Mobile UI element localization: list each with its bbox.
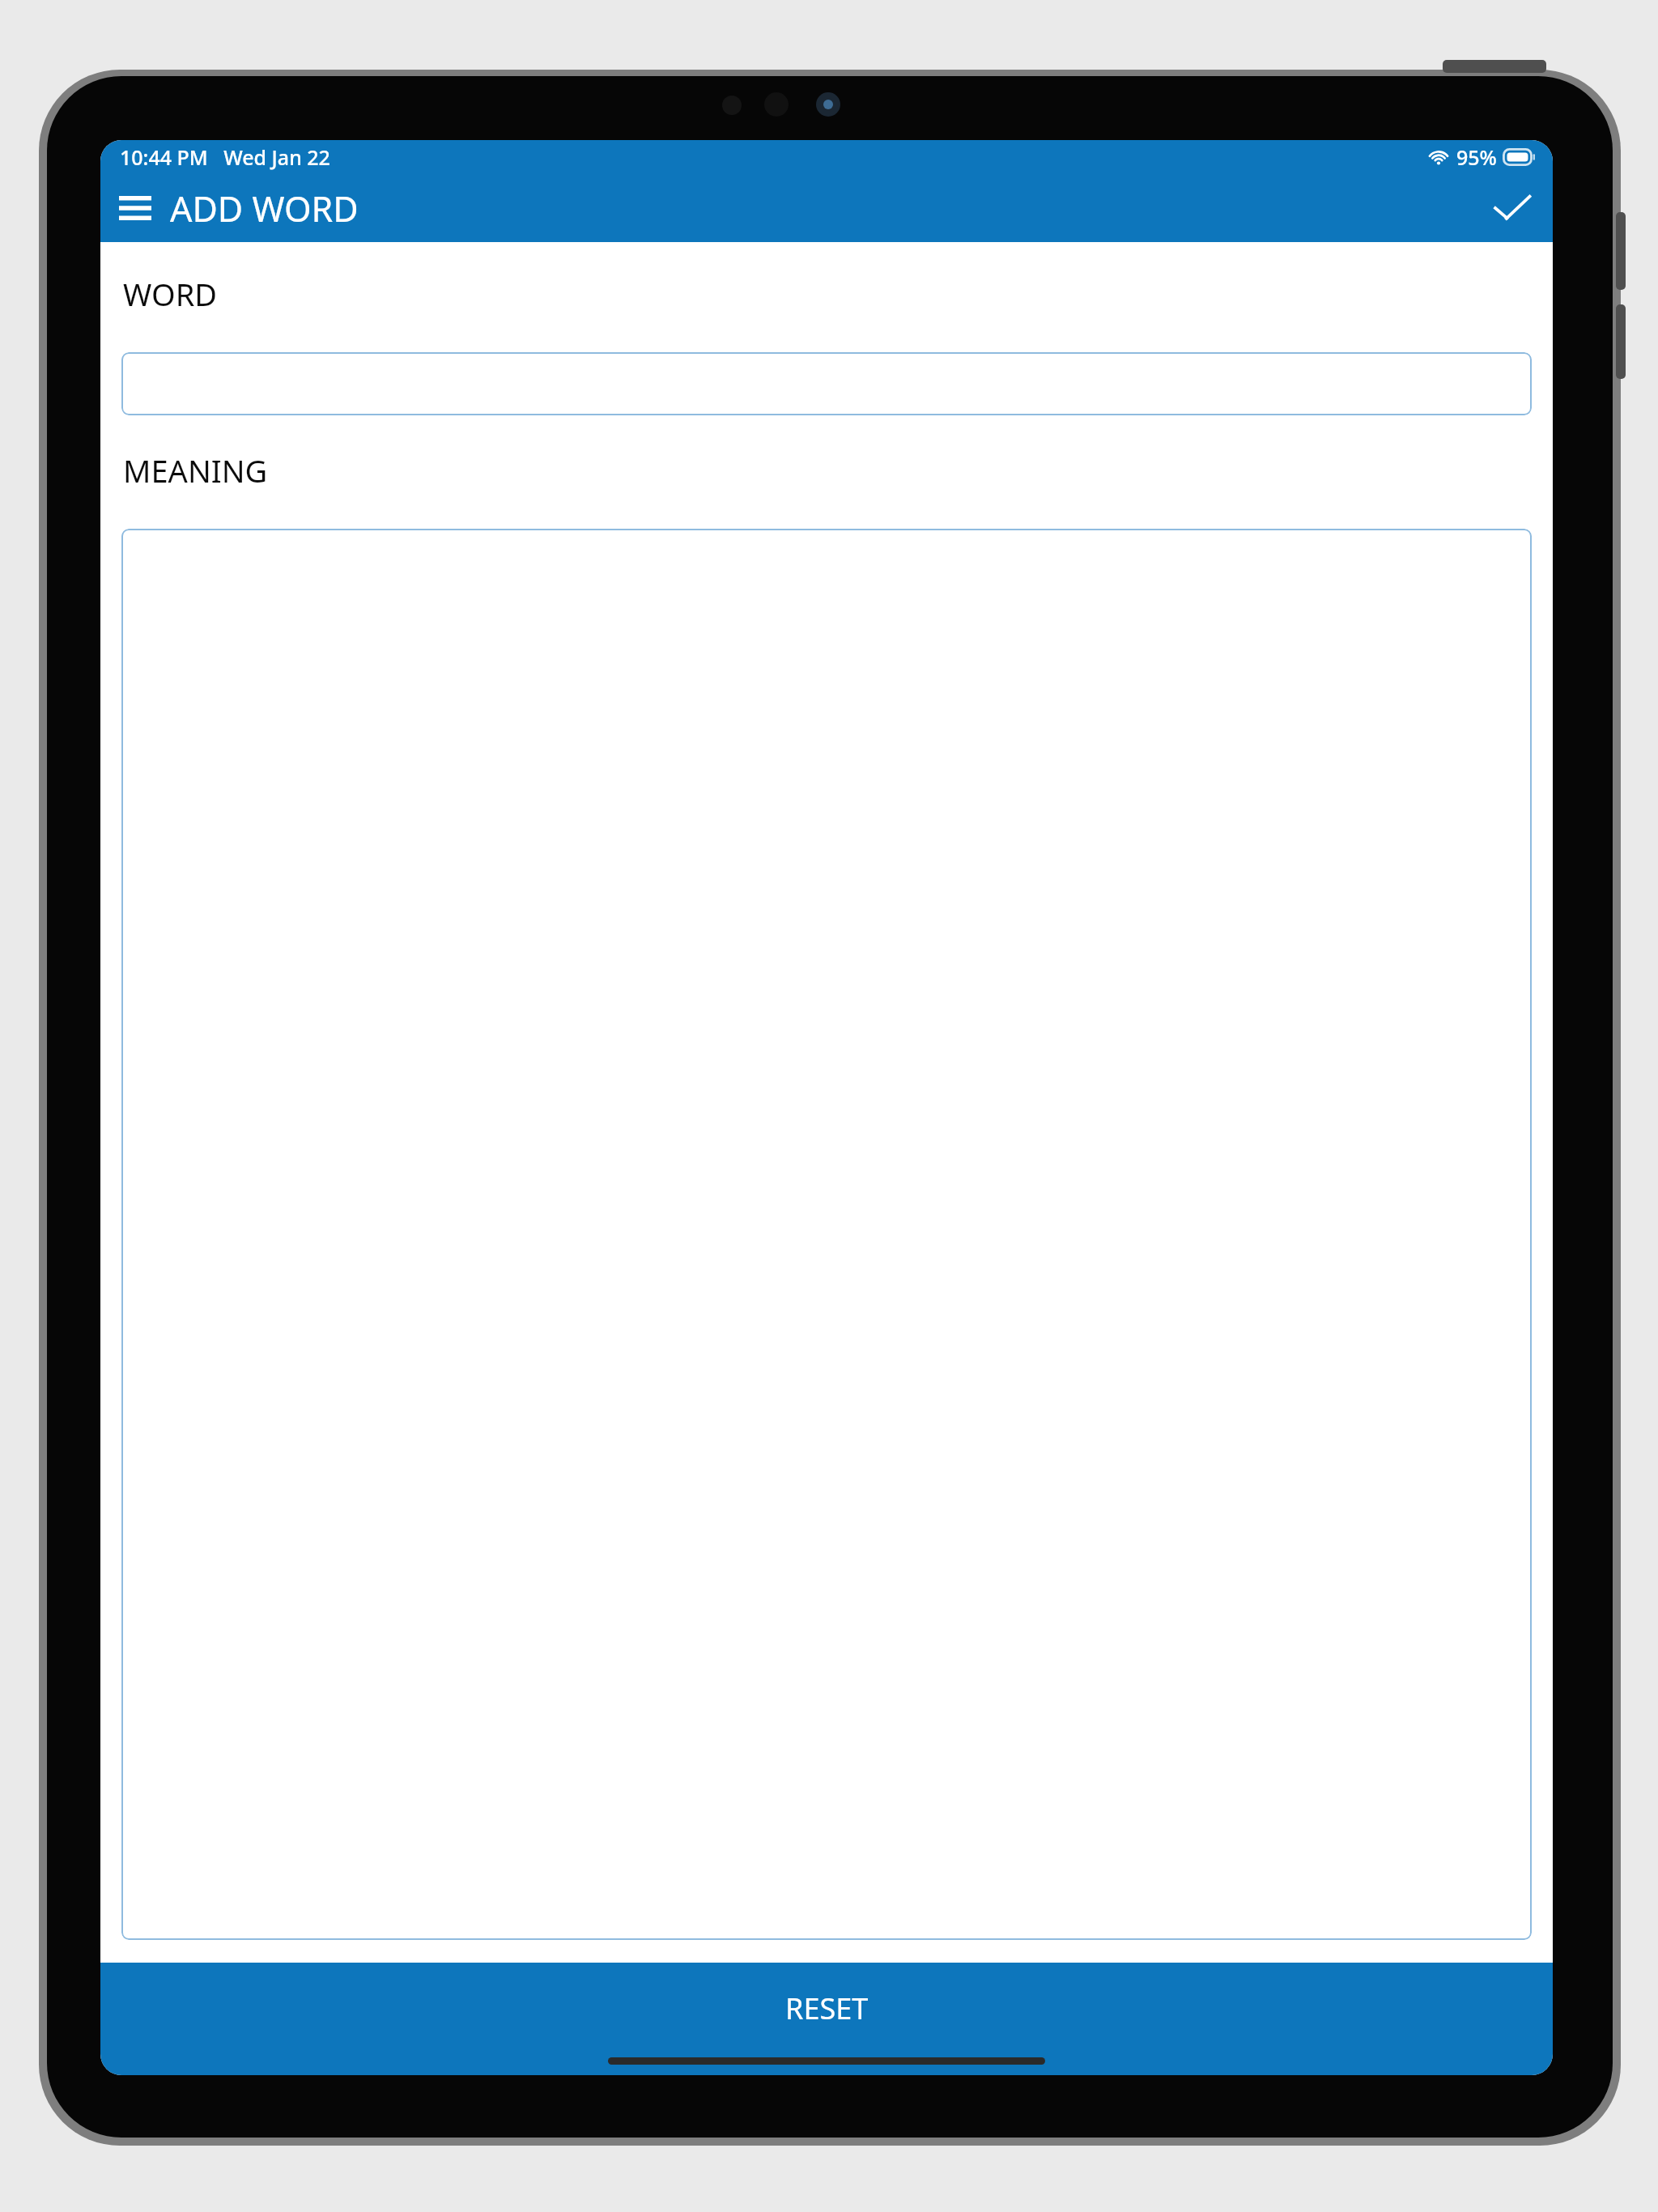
staticText: 95% — [1456, 143, 1497, 171]
button[interactable]: RESET — [100, 1963, 1553, 2075]
staticText: WORD — [123, 273, 218, 315]
button[interactable]: Save word — [1472, 174, 1553, 242]
staticText: 10:44 PM Wed Jan 22 — [120, 143, 330, 171]
button[interactable]: ADD WORD — [170, 185, 359, 232]
staticText: MEANING — [123, 449, 268, 491]
staticText: RESET — [785, 1989, 869, 2028]
button[interactable]: Meaning input field — [121, 529, 1532, 1940]
button[interactable]: Word input field — [121, 352, 1532, 415]
button[interactable]: Open navigation menu — [100, 174, 170, 242]
